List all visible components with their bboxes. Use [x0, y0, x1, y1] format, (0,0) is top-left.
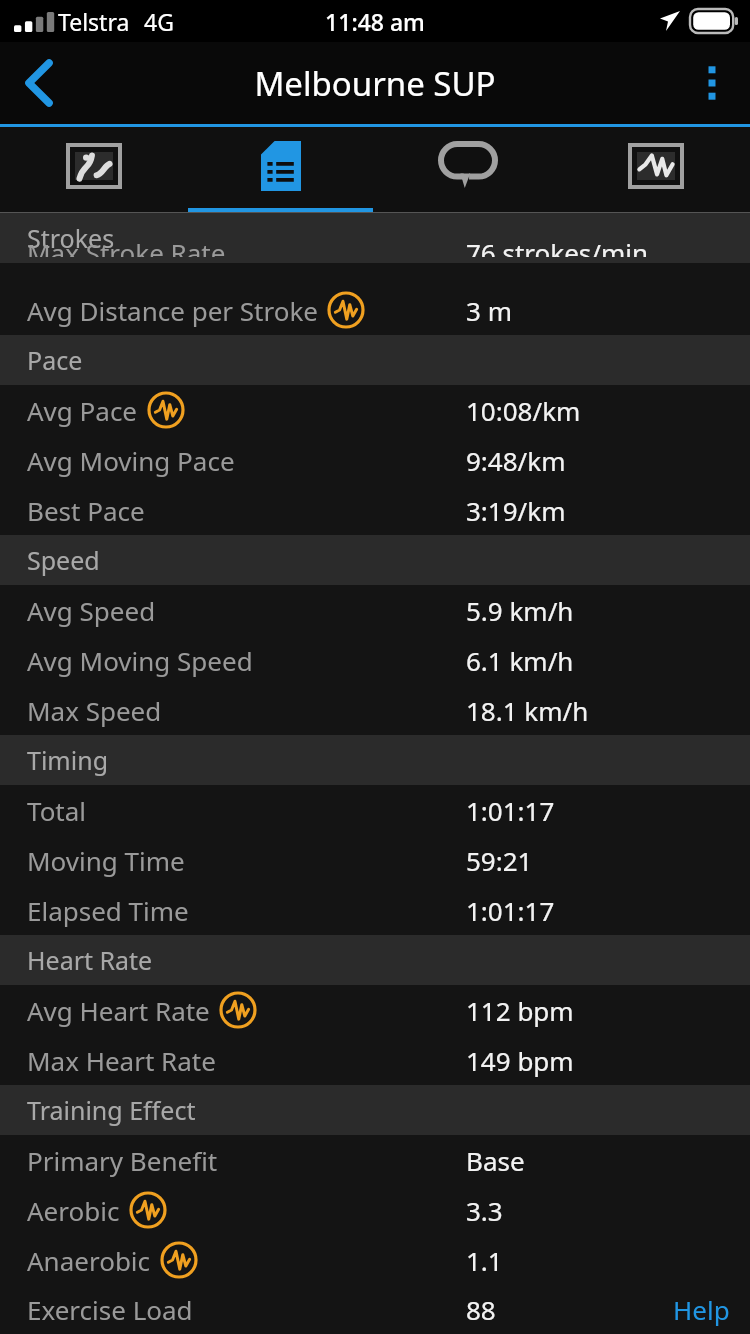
button[interactable]: Laps [374, 127, 562, 212]
staticText: Total [27, 793, 87, 828]
button[interactable]: Back [6, 50, 72, 116]
staticText: Avg Distance per Stroke [27, 293, 318, 328]
staticText: Avg Heart Rate [27, 993, 210, 1028]
staticText: Timing [27, 743, 109, 777]
staticText: 1:01:17 [466, 893, 555, 928]
button[interactable]: Avg Pace [0, 385, 750, 435]
staticText: Avg Pace [27, 393, 138, 428]
button[interactable]: Best Pace [0, 485, 750, 535]
button[interactable]: Graphs [562, 127, 750, 212]
button[interactable]: More options [682, 53, 742, 113]
staticText: 9:48/km [466, 443, 566, 478]
staticText: Avg Moving Pace [27, 443, 235, 478]
staticText: Elapsed Time [27, 893, 189, 928]
staticText: 1.1 [466, 1243, 503, 1278]
button[interactable]: Primary Benefit [0, 1135, 750, 1185]
button[interactable]: Avg Speed [0, 585, 750, 635]
staticText: Telstra [58, 6, 130, 37]
staticText: 18.1 km/h [466, 693, 589, 728]
staticText: Max Stroke Rate [27, 235, 226, 257]
button[interactable]: Avg Moving Speed [0, 635, 750, 685]
staticText: Heart Rate [27, 943, 153, 977]
staticText: 112 bpm [466, 993, 574, 1028]
staticText: Moving Time [27, 843, 185, 878]
staticText: 5.9 km/h [466, 593, 574, 628]
button[interactable]: Avg Moving Pace [0, 435, 750, 485]
button[interactable]: Moving Time [0, 835, 750, 885]
staticText: Primary Benefit [27, 1143, 218, 1178]
staticText: Aerobic [27, 1193, 120, 1228]
staticText: 1:01:17 [466, 793, 555, 828]
staticText: Help [673, 1292, 730, 1327]
button[interactable]: Anaerobic [0, 1235, 750, 1285]
button[interactable]: Max Speed [0, 685, 750, 735]
button[interactable]: Help [673, 1292, 730, 1327]
staticText: Avg Moving Speed [27, 643, 253, 678]
staticText: 88 [466, 1292, 496, 1327]
staticText: Best Pace [27, 493, 145, 528]
staticText: 3:19/km [466, 493, 566, 528]
button[interactable]: Map [0, 127, 187, 212]
staticText: Speed [27, 543, 100, 577]
staticText: 3 m [466, 293, 512, 328]
staticText: Training Effect [27, 1093, 196, 1127]
button[interactable]: Aerobic [0, 1185, 750, 1235]
button[interactable]: Avg Heart Rate [0, 985, 750, 1035]
staticText: 11:48 am [325, 6, 425, 37]
button[interactable]: Elapsed Time [0, 885, 750, 935]
button[interactable]: Details [187, 127, 374, 212]
staticText: 10:08/km [466, 393, 581, 428]
button[interactable]: Total [0, 785, 750, 835]
staticText: 6.1 km/h [466, 643, 574, 678]
staticText: Melbourne SUP [254, 61, 496, 106]
staticText: 76 strokes/min [466, 235, 649, 257]
staticText: Pace [27, 343, 83, 377]
staticText: Base [466, 1143, 525, 1178]
staticText: Strokes [27, 221, 115, 255]
staticText: Max Speed [27, 693, 162, 728]
staticText: 4G [144, 6, 174, 37]
staticText: 149 bpm [466, 1043, 574, 1078]
staticText: 59:21 [466, 843, 533, 878]
staticText: Avg Speed [27, 593, 156, 628]
button[interactable]: Avg Distance per Stroke [0, 285, 750, 335]
button[interactable]: Exercise Load [0, 1285, 750, 1334]
staticText: Max Heart Rate [27, 1043, 216, 1078]
staticText: Exercise Load [27, 1292, 193, 1327]
button[interactable]: Max Heart Rate [0, 1035, 750, 1085]
staticText: 3.3 [466, 1193, 503, 1228]
staticText: Anaerobic [27, 1243, 151, 1278]
